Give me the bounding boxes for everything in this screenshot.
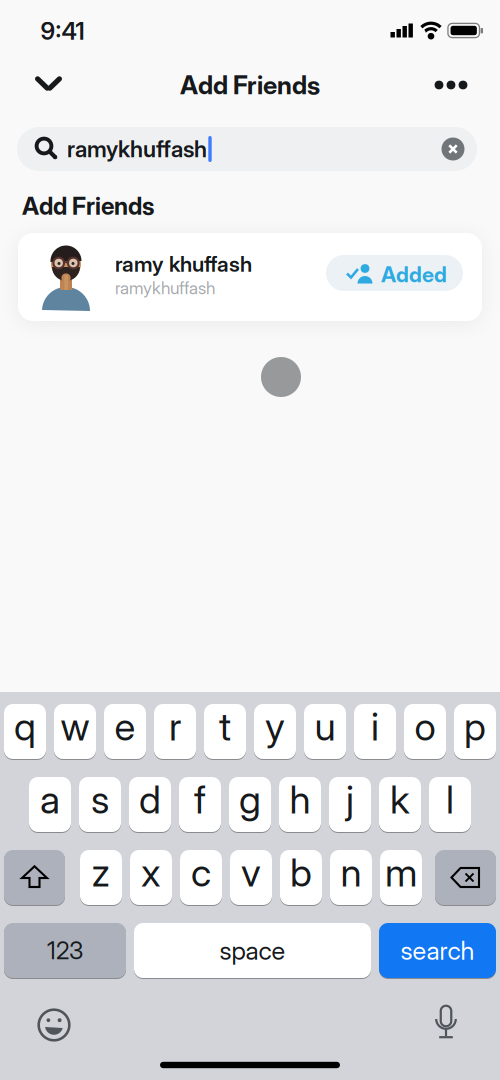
- button[interactable]: h: [279, 777, 321, 832]
- button[interactable]: Clear search: [441, 137, 465, 161]
- button[interactable]: p: [454, 704, 496, 759]
- staticText: ramykhuffash: [115, 278, 215, 298]
- button[interactable]: r: [154, 704, 196, 759]
- button[interactable]: Added: [326, 255, 463, 291]
- staticText: ramykhuffash: [67, 136, 207, 162]
- staticText: q: [14, 704, 36, 749]
- staticText: v: [241, 850, 261, 895]
- button[interactable]: x: [130, 850, 172, 905]
- staticText: o: [414, 704, 435, 749]
- button[interactable]: v: [230, 850, 272, 905]
- button[interactable]: z: [80, 850, 122, 905]
- staticText: Added: [381, 262, 447, 287]
- staticText: s: [91, 777, 109, 822]
- staticText: m: [385, 850, 417, 895]
- staticText: ramy khuffash: [115, 251, 252, 277]
- staticText: 9:41: [40, 17, 84, 45]
- staticText: d: [139, 777, 161, 822]
- button[interactable]: u: [304, 704, 346, 759]
- button[interactable]: t: [204, 704, 246, 759]
- staticText: t: [219, 704, 231, 749]
- button[interactable]: s: [79, 777, 121, 832]
- button[interactable]: c: [180, 850, 222, 905]
- button[interactable]: Search: [379, 923, 496, 978]
- staticText: x: [141, 850, 161, 895]
- staticText: h: [289, 777, 310, 822]
- button[interactable]: w: [54, 704, 96, 759]
- button[interactable]: l: [429, 777, 471, 832]
- staticText: i: [371, 704, 379, 749]
- staticText: p: [464, 704, 486, 749]
- staticText: 123: [47, 936, 83, 965]
- button[interactable]: Delete: [435, 850, 496, 905]
- button[interactable]: m: [380, 850, 422, 905]
- button[interactable]: f: [179, 777, 221, 832]
- button[interactable]: ramy khuffash: [18, 233, 482, 321]
- button[interactable]: n: [330, 850, 372, 905]
- button[interactable]: Numbers: [4, 923, 126, 978]
- staticText: w: [60, 704, 89, 749]
- staticText: y: [265, 704, 285, 749]
- staticText: Add Friends: [180, 70, 320, 100]
- button[interactable]: y: [254, 704, 296, 759]
- staticText: g: [239, 777, 261, 822]
- button[interactable]: i: [354, 704, 396, 759]
- button[interactable]: j: [329, 777, 371, 832]
- button[interactable]: k: [379, 777, 421, 832]
- staticText: r: [169, 704, 181, 749]
- button[interactable]: Space: [134, 923, 371, 978]
- button[interactable]: q: [4, 704, 46, 759]
- button[interactable]: e: [104, 704, 146, 759]
- staticText: search: [400, 936, 474, 965]
- button[interactable]: Emoji: [32, 1003, 76, 1047]
- button[interactable]: More options: [423, 73, 479, 97]
- staticText: Add Friends: [22, 192, 154, 220]
- staticText: b: [290, 850, 312, 895]
- staticText: u: [314, 704, 335, 749]
- button[interactable]: Shift: [4, 850, 65, 905]
- staticText: space: [219, 936, 285, 965]
- button[interactable]: Search field: [17, 127, 477, 171]
- button[interactable]: Dismiss: [26, 66, 70, 102]
- button[interactable]: d: [129, 777, 171, 832]
- button[interactable]: b: [280, 850, 322, 905]
- staticText: a: [40, 777, 60, 822]
- button[interactable]: a: [29, 777, 71, 832]
- staticText: l: [446, 777, 454, 822]
- staticText: f: [194, 777, 206, 822]
- button[interactable]: g: [229, 777, 271, 832]
- staticText: z: [91, 850, 110, 895]
- staticText: j: [346, 777, 354, 822]
- staticText: e: [114, 704, 135, 749]
- staticText: c: [191, 850, 211, 895]
- staticText: n: [340, 850, 361, 895]
- button[interactable]: Dictation: [424, 1003, 468, 1047]
- staticText: k: [390, 777, 410, 822]
- button[interactable]: o: [404, 704, 446, 759]
